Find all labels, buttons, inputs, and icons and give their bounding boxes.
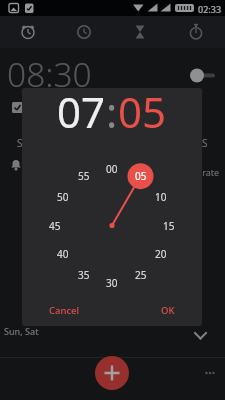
button[interactable]: 20 — [150, 246, 172, 262]
staticText: 10 — [155, 190, 167, 204]
button[interactable]: 35 — [73, 267, 95, 283]
staticText: Cancel — [49, 304, 80, 317]
button[interactable]: 45 — [44, 218, 66, 234]
staticText: 05 — [135, 169, 147, 183]
button[interactable]: 50 — [52, 189, 74, 205]
button[interactable] — [190, 326, 211, 344]
staticText: 25 — [135, 268, 147, 282]
staticText: OK — [161, 304, 175, 317]
staticText: S — [17, 136, 23, 150]
button[interactable]: 10 — [150, 189, 172, 205]
button[interactable]: OK — [150, 300, 186, 320]
button[interactable]: 30 — [101, 275, 123, 291]
button[interactable]: 15 — [158, 218, 180, 234]
staticText: 15 — [163, 219, 175, 233]
staticText: 30 — [106, 276, 118, 290]
button[interactable] — [56, 16, 112, 48]
staticText: 00 — [106, 162, 118, 176]
staticText: 50 — [57, 190, 69, 204]
staticText: 02:33 — [198, 3, 222, 15]
button[interactable]: 05 — [130, 168, 152, 184]
button[interactable]: 25 — [130, 267, 152, 283]
button[interactable] — [112, 16, 168, 48]
staticText: 55 — [78, 169, 90, 183]
button[interactable]: 55 — [73, 168, 95, 184]
button[interactable]: 40 — [52, 246, 74, 262]
staticText: : — [106, 88, 118, 140]
staticText: Sun, Sat — [4, 325, 39, 337]
button[interactable] — [186, 64, 218, 86]
button[interactable] — [202, 366, 220, 380]
staticText: 35 — [78, 268, 90, 282]
button[interactable] — [168, 16, 224, 48]
button[interactable] — [95, 356, 129, 390]
staticText: 07 — [57, 88, 106, 140]
staticText: 08:30 — [7, 51, 92, 97]
button[interactable] — [0, 16, 56, 48]
button[interactable]: Cancel — [42, 300, 86, 320]
staticText: 40 — [57, 247, 69, 261]
staticText: 05 — [118, 88, 167, 140]
staticText: Vibrate — [189, 166, 220, 178]
button[interactable]: 00 — [101, 161, 123, 177]
staticText: 45 — [49, 219, 61, 233]
staticText: S — [202, 136, 208, 150]
staticText: 20 — [155, 247, 167, 261]
